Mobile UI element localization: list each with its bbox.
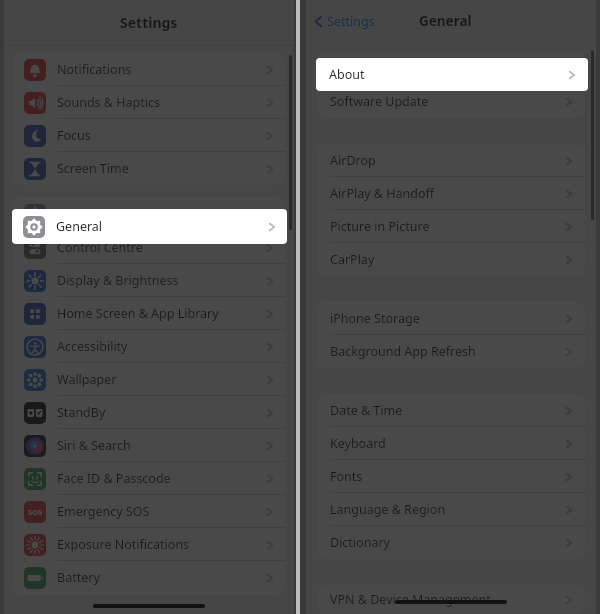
button[interactable]: CarPlay: [317, 243, 585, 276]
button[interactable]: Exposure Notifications: [13, 528, 285, 561]
button[interactable]: Accessibility: [13, 330, 285, 363]
button[interactable]: StandBy: [13, 396, 285, 429]
button[interactable]: Fonts: [317, 460, 585, 493]
staticText: Control Centre: [57, 239, 265, 256]
staticText: StandBy: [57, 404, 265, 421]
button[interactable]: Focus: [13, 119, 285, 152]
staticText: VPN & Device Management: [330, 591, 564, 608]
staticText: Picture in Picture: [330, 218, 564, 235]
button[interactable]: SOS: [13, 495, 285, 528]
staticText: About: [330, 60, 564, 77]
staticText: AirPlay & Handoff: [330, 185, 564, 202]
button[interactable]: General: [12, 209, 287, 244]
button[interactable]: Background App Refresh: [317, 335, 585, 368]
staticText: Wallpaper: [57, 371, 265, 388]
button[interactable]: Control Centre: [13, 231, 285, 264]
button[interactable]: iPhone Storage: [317, 302, 585, 335]
button[interactable]: About: [316, 58, 588, 91]
button[interactable]: VPN & Device Management: [317, 585, 585, 614]
button[interactable]: Back: [308, 12, 324, 28]
button[interactable]: Face ID & Passcode: [13, 462, 285, 495]
staticText: About: [329, 66, 567, 83]
staticText: CarPlay: [330, 251, 564, 268]
button[interactable]: Sounds & Haptics: [13, 86, 285, 119]
staticText: Dictionary: [330, 534, 564, 551]
staticText: Emergency SOS: [57, 503, 265, 520]
button[interactable]: General: [13, 198, 285, 231]
button[interactable]: Siri & Search: [13, 429, 285, 462]
button[interactable]: Wallpaper: [13, 363, 285, 396]
staticText: General: [56, 218, 267, 235]
button[interactable]: Home Screen & App Library: [13, 297, 285, 330]
staticText: General: [57, 206, 265, 223]
staticText: Date & Time: [330, 402, 564, 419]
staticText: Notifications: [57, 61, 265, 78]
staticText: Accessibility: [57, 338, 265, 355]
button[interactable]: Battery: [13, 561, 285, 594]
staticText: Screen Time: [57, 160, 265, 177]
staticText: Focus: [57, 127, 265, 144]
staticText: Battery: [57, 569, 265, 586]
button[interactable]: About: [317, 52, 585, 85]
staticText: Software Update: [330, 93, 564, 110]
button[interactable]: Dictionary: [317, 526, 585, 559]
staticText: Keyboard: [330, 435, 564, 452]
staticText: Settings: [327, 13, 375, 30]
button[interactable]: Display & Brightness: [13, 264, 285, 297]
button[interactable]: Notifications: [13, 53, 285, 86]
staticText: Sounds & Haptics: [57, 94, 265, 111]
staticText: Settings: [120, 13, 178, 32]
staticText: Language & Region: [330, 501, 564, 518]
button[interactable]: Picture in Picture: [317, 210, 585, 243]
staticText: Background App Refresh: [330, 343, 564, 360]
staticText: General: [419, 12, 472, 30]
staticText: Display & Brightness: [57, 272, 265, 289]
button[interactable]: Settings: [314, 13, 375, 30]
staticText: Exposure Notifications: [57, 536, 265, 553]
staticText: Home Screen & App Library: [57, 305, 265, 322]
button[interactable]: Language & Region: [317, 493, 585, 526]
staticText: iPhone Storage: [330, 310, 564, 327]
button[interactable]: Screen Time: [13, 152, 285, 185]
staticText: AirDrop: [330, 152, 564, 169]
staticText: Fonts: [330, 468, 564, 485]
staticText: Siri & Search: [57, 437, 265, 454]
button[interactable]: Keyboard: [317, 427, 585, 460]
button[interactable]: AirDrop: [317, 144, 585, 177]
button[interactable]: AirPlay & Handoff: [317, 177, 585, 210]
staticText: Face ID & Passcode: [57, 470, 265, 487]
staticText: SOS: [28, 507, 43, 517]
button[interactable]: Software Update: [317, 85, 585, 118]
button[interactable]: Date & Time: [317, 394, 585, 427]
